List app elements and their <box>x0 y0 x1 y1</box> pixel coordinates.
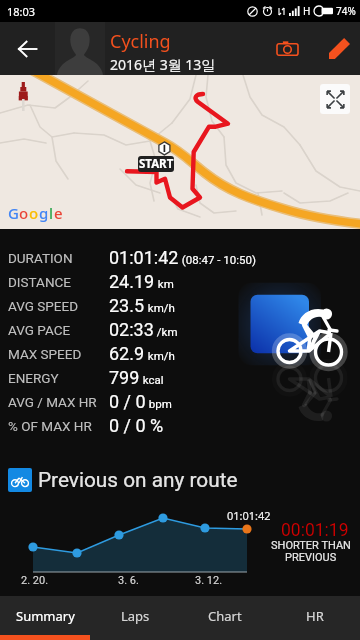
staticText: 18:03 <box>7 4 36 19</box>
staticText: MAX SPEED <box>8 346 82 362</box>
button[interactable]: Back <box>0 22 55 75</box>
staticText: 799 <box>109 367 140 388</box>
staticText: e <box>54 203 63 223</box>
staticText: Cycling <box>110 29 171 54</box>
staticText: 0 / 0 % <box>109 415 164 436</box>
staticText: Summary <box>16 607 75 625</box>
staticText: 23.5 <box>109 295 145 316</box>
staticText: l <box>49 203 54 223</box>
staticText: Chart <box>208 607 242 625</box>
staticText: AVG SPEED <box>8 298 79 314</box>
staticText: AVG PACE <box>8 322 71 338</box>
staticText: o <box>29 203 39 223</box>
staticText: START <box>139 156 174 172</box>
staticText: 3. 12. <box>195 574 223 587</box>
staticText: PREVIOUS <box>285 551 337 564</box>
staticText: km/h <box>145 301 175 314</box>
button[interactable]: Camera <box>267 22 307 75</box>
staticText: 01:01:42 <box>109 247 179 268</box>
staticText: H <box>303 4 311 18</box>
staticText: 62.9 <box>109 343 145 364</box>
staticText: 00:01:19 <box>281 520 349 541</box>
staticText: Previous on any route <box>38 468 238 492</box>
button[interactable]: Laps <box>90 596 180 635</box>
staticText: ENERGY <box>8 370 59 386</box>
button[interactable]: Chart <box>180 596 270 635</box>
staticText: DISTANCE <box>8 274 71 290</box>
staticText: AVG / MAX HR <box>8 394 97 410</box>
button[interactable]: Expand map <box>320 84 350 114</box>
staticText: % OF MAX HR <box>8 418 92 434</box>
staticText: HR <box>306 607 324 625</box>
staticText: SHORTER THAN <box>271 539 351 552</box>
button[interactable]: HR <box>270 596 360 635</box>
staticText: g <box>39 203 49 223</box>
button[interactable]: Edit <box>319 22 359 75</box>
staticText: 74% <box>336 4 356 18</box>
staticText: bpm <box>146 397 172 410</box>
staticText: 24.19 <box>109 271 155 292</box>
staticText: 01:01:42 <box>227 508 271 523</box>
staticText: Laps <box>121 607 150 625</box>
staticText: km <box>155 277 174 290</box>
button[interactable]: Summary <box>0 596 90 635</box>
staticText: o <box>19 203 29 223</box>
staticText: 2. 20. <box>21 574 49 587</box>
staticText: DURATION <box>8 250 73 266</box>
staticText: km/h <box>145 349 175 362</box>
staticText: 0 / 0 <box>109 391 146 412</box>
staticText: 2016년 3월 13일 <box>110 55 216 74</box>
staticText: kcal <box>140 373 164 386</box>
staticText: G <box>8 203 19 223</box>
staticText: /km <box>154 325 178 338</box>
staticText: 02:33 <box>109 319 154 340</box>
staticText: (08:47 - 10:50) <box>179 253 256 266</box>
staticText: 3. 6. <box>118 574 139 587</box>
